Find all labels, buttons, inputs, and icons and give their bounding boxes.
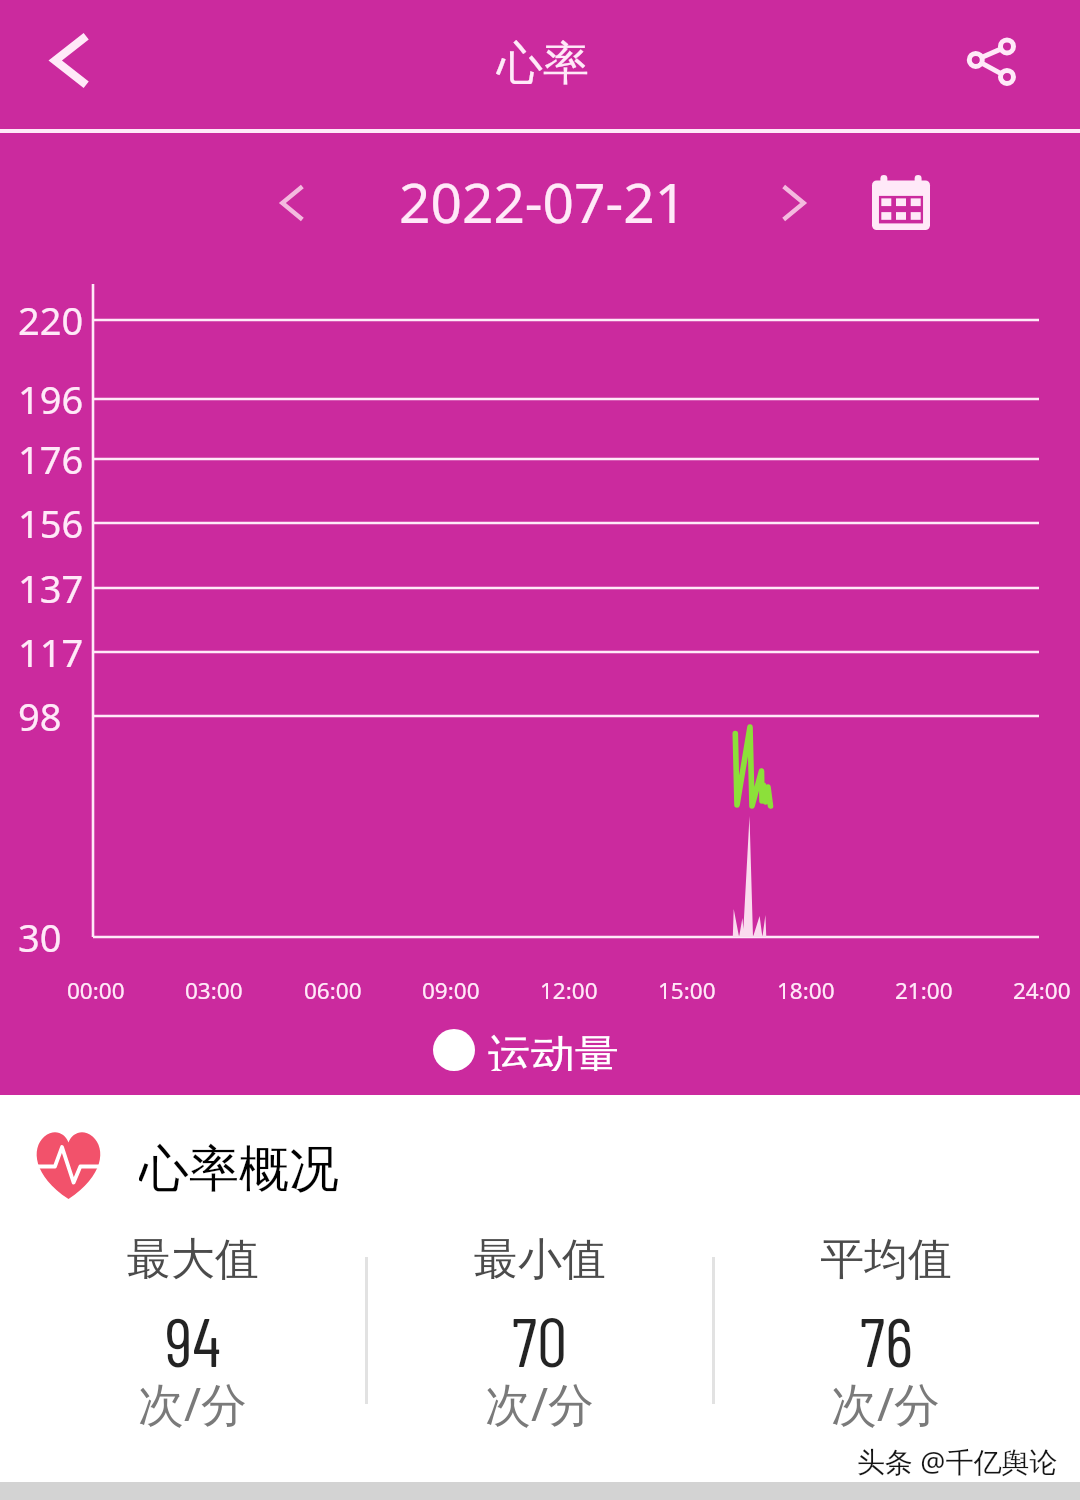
button[interactable]: Pick date	[851, 155, 951, 255]
staticText: 09:00	[422, 975, 480, 1006]
staticText: 平均值	[820, 1232, 952, 1287]
staticText: 最小值	[474, 1232, 606, 1287]
staticText: 运动量	[487, 1029, 619, 1071]
staticText: 176	[18, 433, 84, 485]
staticText: 2022-07-21	[399, 164, 687, 239]
staticText: 次/分	[485, 1372, 595, 1430]
staticText: 220	[18, 294, 84, 346]
staticText: 06:00	[304, 975, 362, 1006]
staticText: 117	[18, 626, 84, 678]
staticText: 137	[18, 562, 84, 614]
staticText: 00:00	[67, 975, 125, 1006]
staticText: 196	[18, 373, 84, 425]
staticText: 94	[165, 1299, 221, 1371]
staticText: 心率概况	[139, 1138, 339, 1194]
button[interactable]: Share	[940, 13, 1044, 117]
staticText: 21:00	[895, 975, 953, 1006]
button[interactable]: Back	[18, 13, 122, 117]
button[interactable]: Previous day	[247, 160, 337, 250]
staticText: 30	[18, 911, 62, 963]
staticText: 心率	[497, 35, 589, 93]
staticText: 12:00	[540, 975, 598, 1006]
staticText: 最大值	[127, 1232, 259, 1287]
staticText: 156	[18, 497, 84, 549]
staticText: 次/分	[138, 1372, 248, 1430]
staticText: 03:00	[185, 975, 243, 1006]
staticText: 76	[860, 1299, 913, 1371]
button[interactable]: Next day	[749, 160, 839, 250]
staticText: 头条 @千亿舆论	[857, 1442, 1058, 1480]
staticText: 次/分	[831, 1372, 941, 1430]
staticText: 18:00	[777, 975, 835, 1006]
staticText: 24:00	[1013, 975, 1071, 1006]
staticText: 70	[512, 1299, 568, 1371]
staticText: 98	[18, 690, 62, 742]
staticText: 15:00	[658, 975, 716, 1006]
